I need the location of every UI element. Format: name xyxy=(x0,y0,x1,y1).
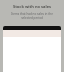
staticText: Items that had no sales in the selected … xyxy=(0,12,64,20)
staticText: Stock with no sales xyxy=(0,4,64,9)
